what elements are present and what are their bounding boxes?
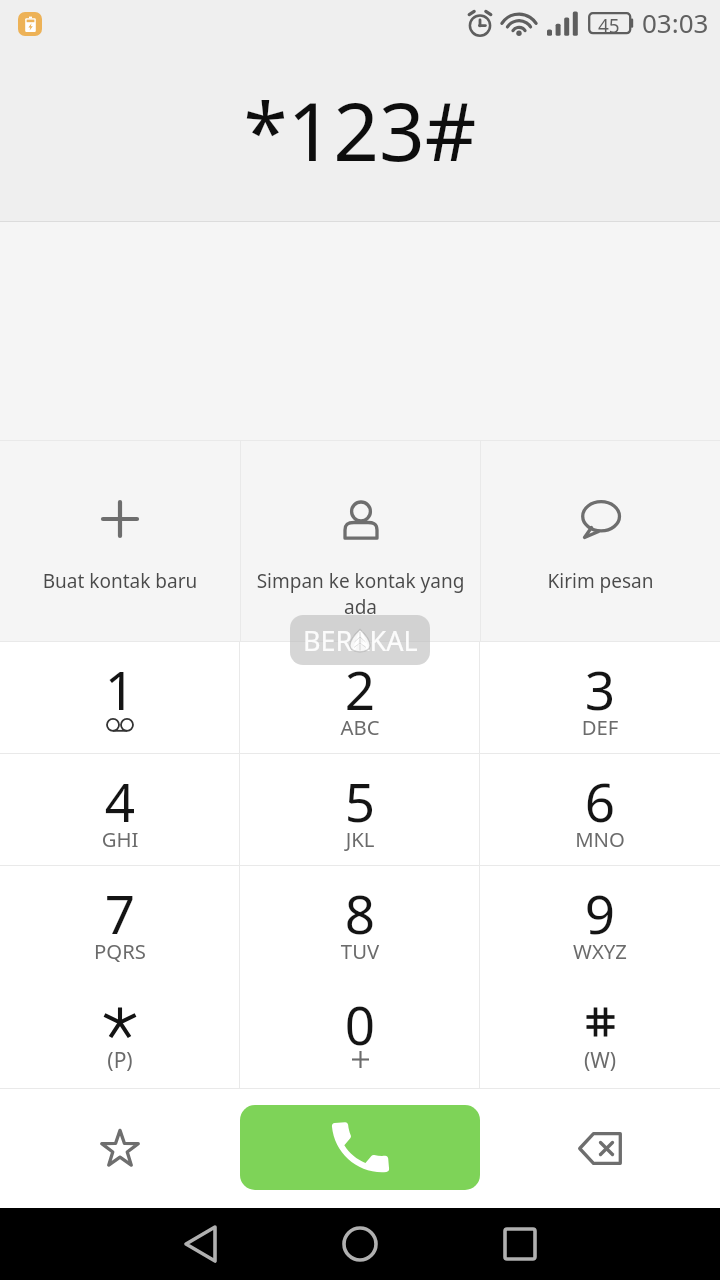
staticText: 5 <box>240 765 480 837</box>
button[interactable]: Home <box>320 1208 400 1280</box>
staticText: MNO <box>480 825 720 853</box>
staticText: 0 <box>240 988 480 1060</box>
button[interactable]: Key 7 <box>0 866 240 978</box>
staticText: 03:03 <box>642 5 709 40</box>
staticText: 9 <box>480 877 720 949</box>
button[interactable]: Key 5 <box>240 754 480 866</box>
staticText: JKL <box>240 825 480 853</box>
button[interactable]: Call <box>240 1105 480 1190</box>
button[interactable]: Key 4 <box>0 754 240 866</box>
staticText: Buat kontak baru <box>6 568 234 594</box>
staticText: 4 <box>0 765 240 837</box>
staticText: 3 <box>480 653 720 725</box>
staticText: DEF <box>480 713 720 741</box>
staticText: (P) <box>0 1046 240 1075</box>
staticText: 6 <box>480 765 720 837</box>
staticText: GHI <box>0 825 240 853</box>
button[interactable]: Recents <box>480 1208 560 1280</box>
button[interactable]: Buat kontak baru <box>0 441 240 641</box>
staticText: BERAKAL <box>303 622 418 659</box>
button[interactable]: Key 1 <box>0 642 240 754</box>
staticText: Kirim pesan <box>487 568 714 594</box>
staticText: ABC <box>240 713 480 741</box>
button[interactable]: Key 2 <box>240 642 480 754</box>
button[interactable]: Hash key <box>480 977 720 1089</box>
button[interactable]: Key 6 <box>480 754 720 866</box>
button[interactable]: Key 0 <box>240 977 480 1089</box>
staticText: 8 <box>240 877 480 949</box>
button[interactable]: Key 8 <box>240 866 480 978</box>
staticText: TUV <box>240 937 480 965</box>
button[interactable]: Key 3 <box>480 642 720 754</box>
staticText: Simpan ke kontak yang ada <box>247 568 474 619</box>
button[interactable]: Kirim pesan <box>481 441 720 641</box>
staticText: 2 <box>240 653 480 725</box>
staticText: (W) <box>480 1046 720 1075</box>
button[interactable]: Favourites <box>40 1089 200 1208</box>
button[interactable]: Back <box>160 1208 240 1280</box>
button[interactable]: Star key <box>0 977 240 1089</box>
button[interactable]: Simpan ke kontak yang ada <box>241 441 480 641</box>
button[interactable]: Backspace <box>520 1089 680 1208</box>
staticText: 45 <box>598 13 620 36</box>
other: Battery saver <box>18 12 42 36</box>
staticText: 7 <box>0 877 240 949</box>
button[interactable]: Key 9 <box>480 866 720 978</box>
staticText: PQRS <box>0 937 240 965</box>
staticText: *123# <box>0 75 720 184</box>
staticText: WXYZ <box>480 937 720 965</box>
staticText: 1 <box>0 653 240 725</box>
